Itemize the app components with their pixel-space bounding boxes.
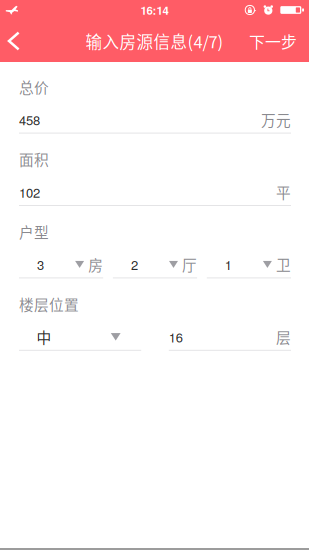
staticText: 房	[88, 254, 103, 275]
staticText: 输入房源信息(4/7)	[85, 29, 223, 53]
staticText: 层	[276, 326, 291, 347]
staticText: 厅	[182, 254, 197, 275]
staticText: 面积	[19, 149, 49, 170]
button[interactable]: 中	[19, 326, 141, 350]
staticText: 2	[131, 255, 138, 274]
staticText: 16:14	[140, 2, 168, 18]
staticText: 卫	[276, 254, 291, 275]
button[interactable]: 2	[113, 254, 197, 277]
button[interactable]: 1	[207, 254, 291, 277]
button[interactable]: Back	[0, 21, 35, 61]
staticText: 楼层位置	[19, 293, 79, 315]
staticText: 102	[19, 183, 40, 201]
staticText: 万元	[261, 109, 291, 130]
staticText: 16	[169, 327, 183, 346]
staticText: 458	[19, 110, 40, 129]
staticText: 1	[225, 255, 232, 274]
staticText: 平	[276, 181, 291, 203]
staticText: 中	[36, 326, 51, 347]
staticText: 下一步	[249, 29, 297, 52]
button[interactable]: 3	[19, 254, 103, 277]
staticText: 3	[37, 255, 44, 274]
button[interactable]: 下一步	[233, 17, 309, 64]
staticText: 户型	[19, 221, 49, 242]
staticText: 总价	[19, 76, 49, 97]
